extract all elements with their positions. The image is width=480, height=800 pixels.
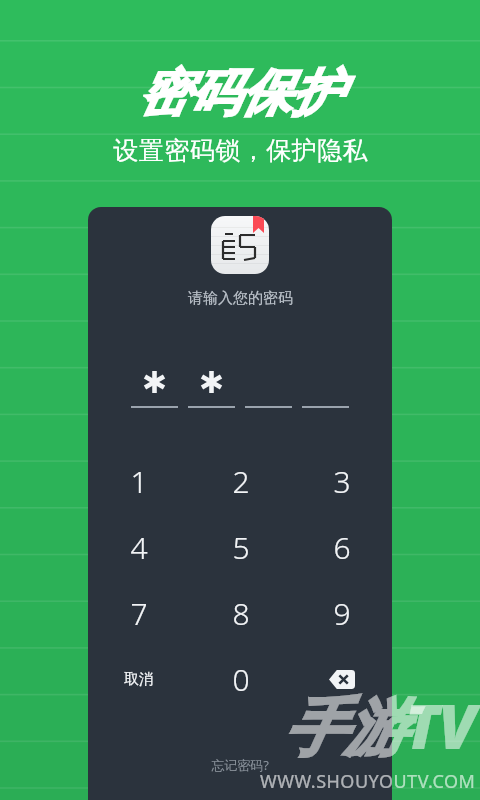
staticText: 3 (333, 461, 351, 502)
button[interactable]: 8 (190, 580, 291, 646)
staticText: 9 (333, 593, 351, 634)
button[interactable]: 6 (291, 514, 392, 580)
staticText: 密码保护 (138, 62, 342, 125)
staticText: 4 (130, 527, 148, 568)
button[interactable]: 2 (190, 448, 291, 514)
staticText: 手游TV (283, 683, 476, 768)
staticText: 8 (232, 593, 250, 634)
staticText: 设置密码锁，保护隐私 (113, 135, 368, 166)
staticText: 2 (232, 461, 250, 502)
staticText: 1 (130, 461, 148, 502)
staticText: 0 (232, 659, 250, 700)
button[interactable]: 忘记密码? (201, 752, 279, 778)
staticText: 6 (333, 527, 351, 568)
button[interactable]: Backspace (291, 646, 392, 712)
button[interactable]: 0 (190, 646, 291, 712)
staticText: 请输入您的密码 (188, 289, 293, 308)
staticText: 5 (232, 527, 250, 568)
button[interactable]: 取消 (88, 646, 190, 712)
button[interactable]: 3 (291, 448, 392, 514)
button[interactable]: 9 (291, 580, 392, 646)
button[interactable]: 4 (88, 514, 190, 580)
staticText: 7 (130, 593, 148, 634)
button[interactable]: 1 (88, 448, 190, 514)
staticText: WWW.SHOUYOUTV.COM (260, 769, 476, 794)
button[interactable]: 7 (88, 580, 190, 646)
staticText: 取消 (124, 670, 154, 689)
button[interactable]: 5 (190, 514, 291, 580)
